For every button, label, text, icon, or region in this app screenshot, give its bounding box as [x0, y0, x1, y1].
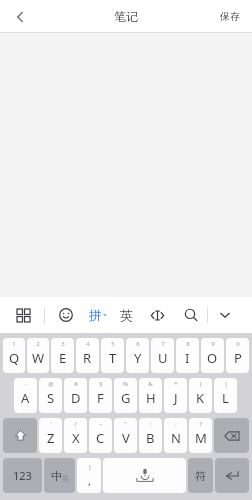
- staticText: 5: [111, 340, 115, 348]
- button[interactable]: -: [14, 378, 37, 413]
- button[interactable]: ): [214, 378, 237, 413]
- staticText: 保存: [220, 10, 240, 23]
- staticText: 2: [36, 340, 40, 348]
- staticText: G: [121, 389, 131, 407]
- staticText: L: [222, 389, 229, 407]
- staticText: ': [50, 420, 52, 428]
- button[interactable]: #: [64, 378, 87, 413]
- staticText: E: [59, 349, 67, 367]
- staticText: M: [195, 429, 207, 447]
- staticText: #: [74, 380, 78, 388]
- button[interactable]: Hide keyboard: [208, 298, 242, 332]
- button[interactable]: Backspace: [214, 418, 249, 453]
- staticText: 6: [136, 340, 140, 348]
- staticText: /: [74, 420, 77, 428]
- button[interactable]: 0: [226, 338, 249, 373]
- staticText: %: [123, 380, 128, 388]
- staticText: &: [148, 380, 153, 388]
- staticText: N: [171, 429, 181, 447]
- button[interactable]: 8: [176, 338, 199, 373]
- button[interactable]: 保存: [220, 0, 240, 33]
- button[interactable]: ?: [189, 418, 212, 453]
- staticText: Q: [9, 349, 20, 367]
- button[interactable]: 4: [76, 338, 99, 373]
- staticText: V: [122, 429, 130, 447]
- button[interactable]: $: [89, 378, 112, 413]
- staticText: Y: [134, 349, 142, 367]
- staticText: 0: [236, 340, 240, 348]
- staticText: 英: [120, 307, 133, 323]
- button[interactable]: /: [64, 418, 87, 453]
- button[interactable]: 1: [3, 338, 25, 373]
- staticText: ~: [99, 420, 103, 428]
- button[interactable]: 拼: [89, 307, 107, 323]
- staticText: W: [32, 349, 45, 367]
- staticText: @: [48, 380, 54, 388]
- staticText: :: [150, 420, 152, 428]
- staticText: ): [225, 380, 227, 388]
- button[interactable]: [103, 458, 186, 493]
- staticText: 拼: [89, 307, 102, 323]
- button[interactable]: Emoji: [53, 302, 79, 328]
- staticText: X: [72, 429, 80, 447]
- button[interactable]: Back: [0, 0, 40, 33]
- staticText: 7: [161, 340, 165, 348]
- staticText: $: [99, 380, 103, 388]
- button[interactable]: 中: [44, 458, 75, 493]
- button[interactable]: 2: [27, 338, 49, 373]
- staticText: *: [174, 380, 178, 388]
- button[interactable]: ;: [164, 418, 187, 453]
- button[interactable]: 符: [188, 458, 213, 493]
- staticText: C: [96, 429, 105, 447]
- button[interactable]: Shift: [3, 418, 37, 453]
- button[interactable]: !: [77, 458, 101, 493]
- staticText: 4: [86, 340, 90, 348]
- button[interactable]: 9: [201, 338, 224, 373]
- button[interactable]: 3: [51, 338, 74, 373]
- staticText: ?: [199, 420, 202, 428]
- button[interactable]: ": [114, 418, 137, 453]
- staticText: K: [196, 389, 205, 407]
- button[interactable]: Cursor: [146, 304, 168, 326]
- button[interactable]: %: [114, 378, 137, 413]
- button[interactable]: ': [39, 418, 62, 453]
- button[interactable]: @: [39, 378, 62, 413]
- button[interactable]: 7: [151, 338, 174, 373]
- staticText: 8: [186, 340, 190, 348]
- staticText: ;: [175, 420, 177, 428]
- staticText: 1: [12, 340, 16, 348]
- staticText: F: [97, 389, 104, 407]
- staticText: D: [71, 389, 81, 407]
- button[interactable]: Search: [179, 303, 203, 327]
- staticText: U: [158, 349, 168, 367]
- staticText: 符: [195, 469, 206, 483]
- button[interactable]: 123: [3, 458, 42, 493]
- staticText: O: [207, 349, 218, 367]
- staticText: T: [109, 349, 117, 367]
- button[interactable]: 6: [126, 338, 149, 373]
- staticText: !: [89, 463, 91, 473]
- staticText: 123: [13, 468, 32, 483]
- staticText: J: [174, 389, 178, 407]
- staticText: R: [83, 349, 92, 367]
- staticText: ": [124, 420, 127, 428]
- staticText: 笔记: [114, 9, 138, 24]
- staticText: 中: [51, 469, 62, 483]
- staticText: A: [21, 389, 30, 407]
- staticText: -: [25, 380, 27, 388]
- staticText: Z: [47, 429, 55, 447]
- button[interactable]: ~: [89, 418, 112, 453]
- staticText: B: [146, 429, 155, 447]
- button[interactable]: &: [139, 378, 162, 413]
- button[interactable]: Enter: [215, 458, 249, 493]
- button[interactable]: *: [164, 378, 187, 413]
- staticText: S: [47, 389, 55, 407]
- button[interactable]: Keyboard modes: [10, 302, 36, 328]
- button[interactable]: (: [189, 378, 212, 413]
- button[interactable]: 英: [120, 307, 133, 323]
- staticText: (: [200, 380, 202, 388]
- button[interactable]: :: [139, 418, 162, 453]
- staticText: 英: [62, 474, 69, 483]
- button[interactable]: 5: [101, 338, 124, 373]
- staticText: 3: [61, 340, 65, 348]
